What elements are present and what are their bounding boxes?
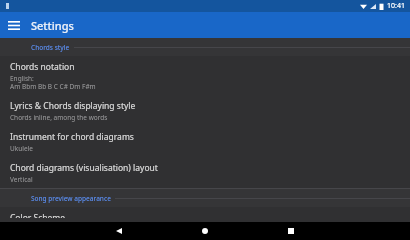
button[interactable]: Open navigation menu [5,16,23,34]
button[interactable]: Home [196,222,214,240]
staticText: Chords inline, among the words [10,113,108,122]
staticText: Ukulele [10,144,33,153]
button[interactable]: Color Scheme [0,207,410,222]
button[interactable]: Chord diagrams (visualisation) layout [0,157,410,188]
staticText: Chords notation [10,61,75,73]
button[interactable]: Chords notation [0,56,410,95]
staticText: Chord diagrams (visualisation) layout [10,162,158,174]
staticText: Chords style [31,43,70,52]
button[interactable]: Instrument for chord diagrams [0,126,410,157]
staticText: Instrument for chord diagrams [10,131,134,143]
staticText: Color Scheme [10,212,66,218]
staticText: Song preview appearance [31,194,111,203]
staticText: Lyrics & Chords displaying style [10,100,136,112]
button[interactable]: Recent apps [282,222,300,240]
button[interactable]: Lyrics & Chords displaying style [0,95,410,126]
button[interactable]: Back [110,222,128,240]
staticText: Vertical [10,175,33,184]
staticText: English: Am Bbm Bb B C C# Dm F#m [10,74,96,91]
staticText: Settings [31,18,74,33]
staticText: 10:41 [387,1,405,11]
